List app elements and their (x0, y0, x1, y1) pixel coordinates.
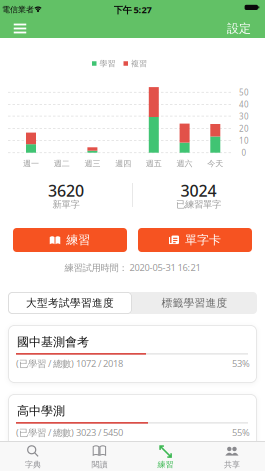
staticText: 單字卡 (185, 233, 221, 247)
staticText: 學習 (99, 59, 115, 68)
button[interactable]: Menu (8, 19, 32, 37)
staticText: 大型考試學習進度 (26, 296, 114, 309)
staticText: 高中學測 (17, 404, 65, 418)
staticText: (已學習 / 總數) 1072 / 2018 (16, 357, 123, 370)
button[interactable]: 共享 (202, 442, 262, 471)
button[interactable]: 高中學測 (8, 394, 257, 452)
staticText: 55% (232, 426, 250, 439)
button[interactable]: 字典 (3, 442, 63, 471)
button[interactable]: 單字卡 (138, 228, 252, 252)
button[interactable]: 國中基測會考 (8, 325, 257, 383)
staticText: 已練習單字 (176, 199, 221, 210)
staticText: 週六 (177, 159, 193, 168)
button[interactable]: 設定 (221, 19, 257, 37)
staticText: 電信業者 (2, 5, 34, 14)
staticText: 40 (239, 99, 249, 110)
staticText: 練習試用時間： 2020-05-31 16:21 (64, 261, 200, 274)
button[interactable]: 標籤學習進度 (132, 292, 256, 314)
staticText: 複習 (131, 59, 147, 68)
staticText: (已學習 / 總數) 3023 / 5450 (16, 426, 123, 439)
staticText: 練習 (158, 460, 174, 469)
staticText: 新單字 (52, 199, 79, 210)
staticText: 設定 (227, 21, 251, 36)
staticText: 30 (239, 111, 249, 122)
staticText: 50 (239, 87, 249, 98)
staticText: 閱讀 (91, 460, 107, 469)
staticText: 週四 (115, 159, 131, 168)
staticText: 3024 (180, 180, 216, 201)
staticText: 週二 (54, 159, 70, 168)
staticText: 3620 (48, 180, 84, 201)
staticText: 0 (241, 147, 246, 158)
staticText: 10 (239, 135, 249, 146)
staticText: 週五 (146, 159, 162, 168)
staticText: 標籤學習進度 (161, 296, 227, 309)
staticText: 共享 (224, 460, 240, 469)
button[interactable]: 練習 (13, 228, 127, 252)
staticText: 週一 (23, 159, 39, 168)
button[interactable]: 大型考試學習進度 (8, 292, 132, 314)
staticText: 今天 (207, 159, 223, 168)
button[interactable]: 閱讀 (69, 442, 129, 471)
staticText: 字典 (25, 460, 41, 469)
staticText: 53% (232, 357, 250, 370)
button[interactable]: 練習 (136, 442, 196, 471)
staticText: 練習 (66, 233, 90, 247)
staticText: 國中基測會考 (17, 335, 89, 349)
staticText: 20 (239, 123, 249, 134)
staticText: 週三 (84, 159, 100, 168)
staticText: 下午 5:27 (113, 3, 151, 16)
